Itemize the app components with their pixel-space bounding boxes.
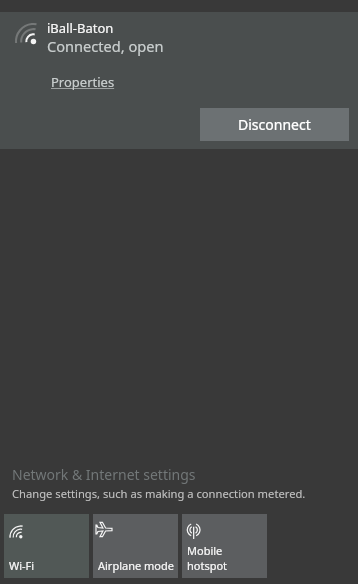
- button[interactable]: Airplane mode: [93, 514, 178, 578]
- staticText: Mobile hotspot: [187, 543, 228, 573]
- staticText: Properties: [51, 73, 115, 91]
- staticText: Airplane mode: [98, 558, 174, 573]
- staticText: Change settings, such as making a connec…: [12, 486, 306, 501]
- button[interactable]: Wi-Fi signal: [0, 12, 358, 149]
- button[interactable]: Disconnect: [200, 108, 349, 141]
- staticText: Wi-Fi: [9, 558, 35, 573]
- other: Wi-Fi signal: [16, 24, 37, 45]
- staticText: iBall-Baton: [47, 19, 114, 37]
- button[interactable]: Properties: [48, 71, 118, 93]
- staticText: Disconnect: [238, 115, 311, 134]
- button[interactable]: Wi-Fi: [4, 514, 89, 578]
- staticText: Connected, open: [47, 36, 164, 56]
- button[interactable]: Network & Internet settings: [12, 465, 196, 484]
- button[interactable]: Mobile hotspot: [182, 514, 267, 578]
